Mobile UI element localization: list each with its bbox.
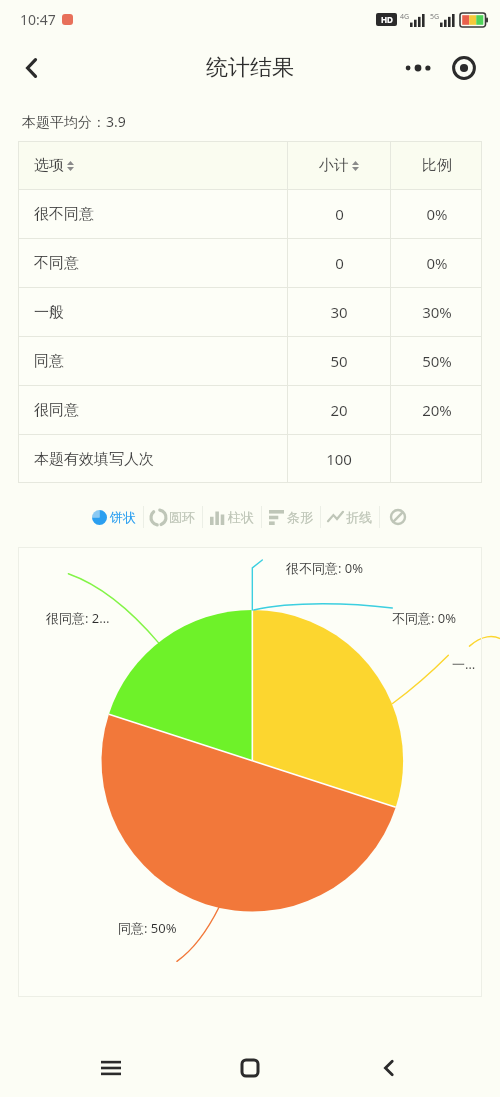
staticText: 很同意: 2… bbox=[46, 609, 110, 627]
button[interactable]: Back bbox=[8, 44, 56, 92]
button[interactable]: 条形 bbox=[269, 500, 313, 534]
staticText: 不同意 bbox=[34, 254, 79, 273]
staticText: 折线 bbox=[346, 509, 372, 525]
button[interactable]: 圆环 bbox=[151, 500, 195, 534]
staticText: 同意: 50% bbox=[118, 919, 177, 937]
button[interactable]: Recents bbox=[83, 1040, 139, 1096]
staticText: HD bbox=[381, 14, 393, 25]
button[interactable]: 柱状 bbox=[210, 500, 254, 534]
staticText: 小计 bbox=[319, 156, 349, 175]
staticText: 30% bbox=[422, 302, 452, 322]
button[interactable]: 折线 bbox=[328, 500, 372, 534]
staticText: 比例 bbox=[422, 156, 452, 175]
staticText: 100 bbox=[326, 449, 352, 469]
button[interactable]: Close bbox=[442, 46, 486, 90]
staticText: 圆环 bbox=[169, 509, 195, 525]
staticText: 0% bbox=[426, 253, 448, 273]
staticText: 0% bbox=[426, 204, 448, 224]
staticText: 统计结果 bbox=[206, 54, 294, 82]
staticText: 不同意: 0% bbox=[392, 609, 457, 627]
staticText: 30 bbox=[330, 302, 348, 322]
staticText: 20 bbox=[330, 400, 348, 420]
staticText: 选项 bbox=[34, 156, 64, 175]
staticText: 同意 bbox=[34, 352, 64, 371]
staticText: 50 bbox=[330, 351, 348, 371]
staticText: 20% bbox=[422, 400, 452, 420]
staticText: 很不同意 bbox=[34, 205, 94, 224]
staticText: 5G bbox=[430, 12, 440, 22]
staticText: 柱状 bbox=[228, 509, 254, 525]
staticText: 一… bbox=[452, 655, 476, 673]
staticText: 条形 bbox=[287, 509, 313, 525]
staticText: 一般 bbox=[34, 303, 64, 322]
staticText: 很不同意: 0% bbox=[286, 559, 364, 577]
button[interactable]: No chart bbox=[390, 500, 406, 534]
staticText: 0 bbox=[335, 204, 344, 224]
staticText: 50% bbox=[422, 351, 452, 371]
staticText: 很同意 bbox=[34, 401, 79, 420]
button[interactable]: Back bbox=[361, 1040, 417, 1096]
button[interactable]: Home bbox=[222, 1040, 278, 1096]
button[interactable]: More options bbox=[396, 46, 440, 90]
staticText: 10:47 bbox=[20, 10, 56, 29]
staticText: 本题有效填写人次 bbox=[34, 450, 154, 469]
button[interactable]: 饼状 bbox=[92, 500, 136, 534]
staticText: 饼状 bbox=[110, 509, 136, 525]
staticText: 0 bbox=[335, 253, 344, 273]
staticText: 4G bbox=[400, 12, 410, 22]
staticText: 本题平均分：3.9 bbox=[22, 112, 126, 131]
